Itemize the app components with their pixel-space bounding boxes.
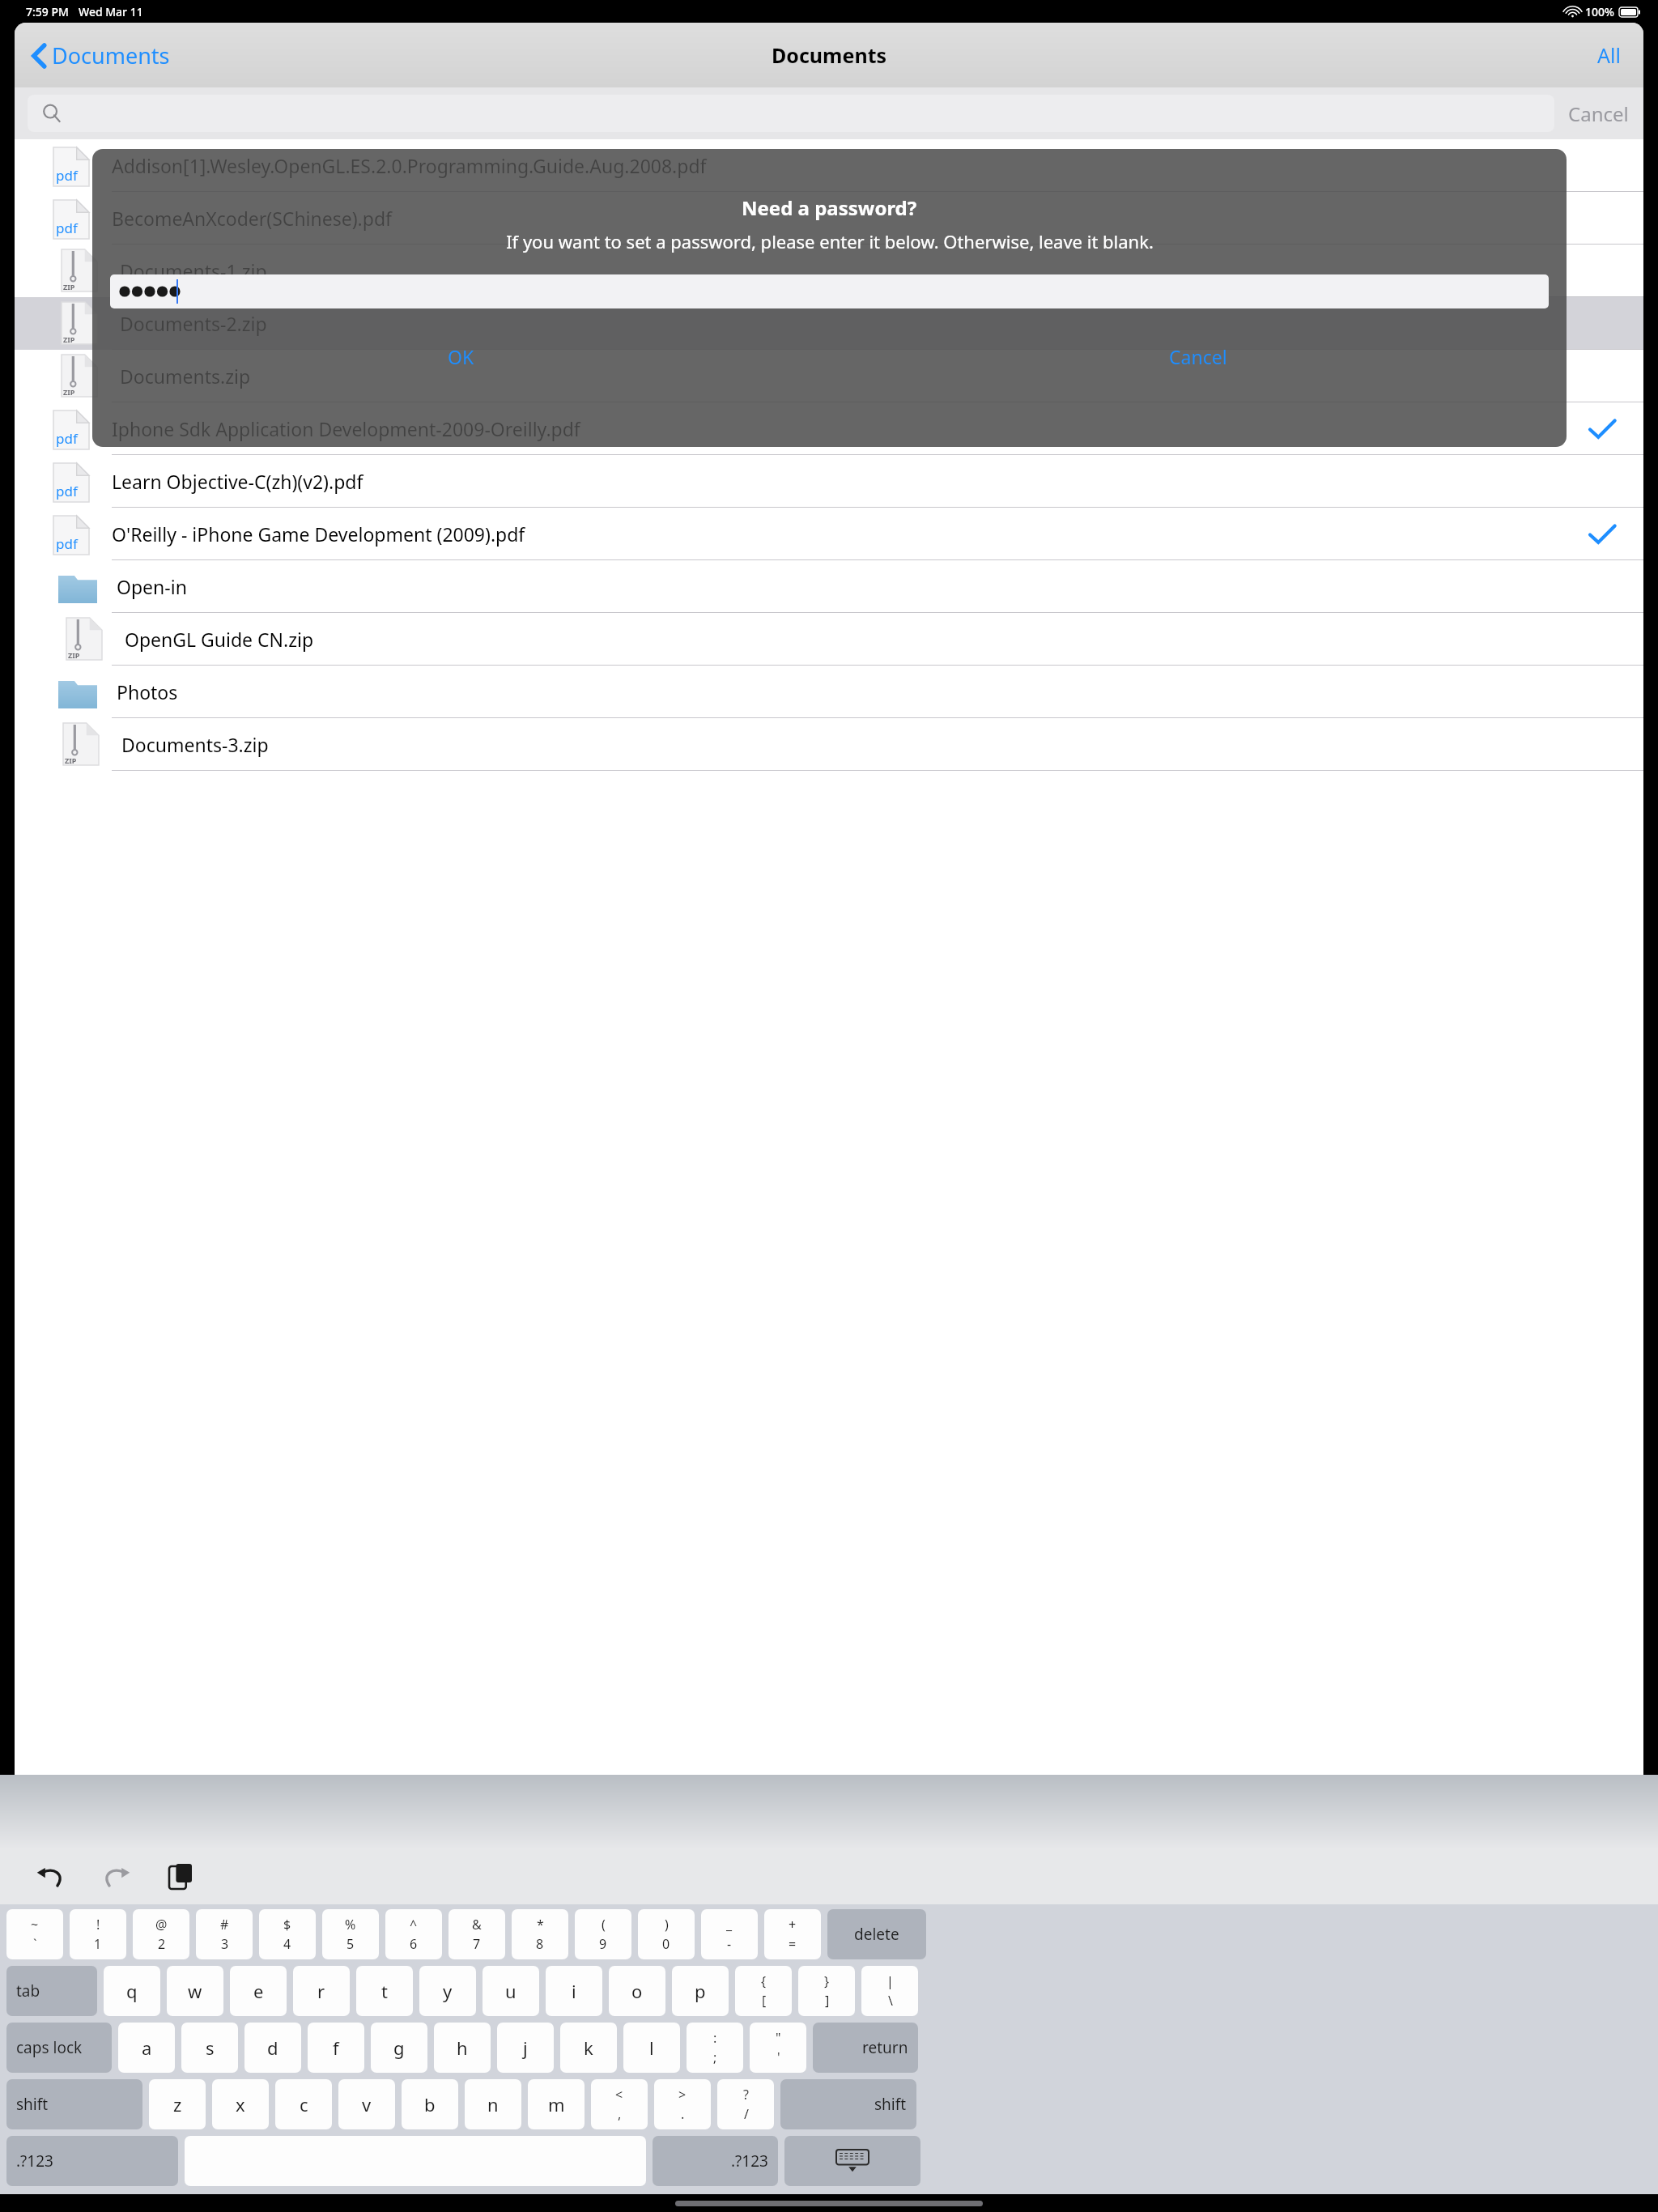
button[interactable]: y (419, 1966, 476, 2016)
button[interactable]: b (402, 2079, 458, 2129)
button[interactable]: ZIP (15, 613, 1643, 666)
button[interactable]: Cancel (1568, 100, 1629, 127)
staticText: pdf (56, 482, 78, 500)
button[interactable]: pdf (15, 402, 1643, 455)
staticText: + (789, 1916, 797, 1933)
button[interactable]: j (497, 2023, 554, 2073)
button[interactable]: > (654, 2079, 711, 2129)
button[interactable]: } (798, 1966, 855, 2016)
button[interactable]: { (735, 1966, 792, 2016)
button[interactable]: % (322, 1909, 379, 1959)
button[interactable] (110, 274, 1549, 308)
button[interactable]: ~ (6, 1909, 63, 1959)
button[interactable]: Cancel (829, 336, 1567, 376)
button[interactable]: _ (701, 1909, 758, 1959)
button[interactable]: i (546, 1966, 602, 2016)
button[interactable]: All (1597, 41, 1621, 69)
staticText: } (824, 1972, 830, 1990)
button[interactable]: l (623, 2023, 680, 2073)
staticText: a (142, 2035, 152, 2060)
button[interactable]: .?123 (6, 2136, 178, 2186)
button[interactable]: Documents (32, 40, 170, 70)
button[interactable]: r (293, 1966, 350, 2016)
button[interactable]: e (230, 1966, 287, 2016)
button[interactable]: : (687, 2023, 743, 2073)
button[interactable]: Paste (162, 1858, 199, 1895)
staticText: _ (726, 1916, 733, 1933)
button[interactable]: & (449, 1909, 505, 1959)
button[interactable]: Undo (32, 1858, 70, 1895)
button[interactable]: $ (259, 1909, 316, 1959)
button[interactable]: n (465, 2079, 521, 2129)
button[interactable]: < (591, 2079, 648, 2129)
button[interactable]: @ (133, 1909, 189, 1959)
button[interactable]: Hide keyboard (784, 2136, 920, 2186)
button[interactable]: a (118, 2023, 175, 2073)
staticText: 6 (410, 1935, 418, 1953)
button[interactable]: + (764, 1909, 821, 1959)
button[interactable]: x (212, 2079, 269, 2129)
button[interactable]: m (528, 2079, 585, 2129)
button[interactable]: h (434, 2023, 491, 2073)
button[interactable]: pdf (15, 508, 1643, 560)
button[interactable]: w (167, 1966, 223, 2016)
button[interactable]: s (181, 2023, 238, 2073)
button[interactable]: " (750, 2023, 806, 2073)
button[interactable]: .?123 (653, 2136, 778, 2186)
button[interactable]: caps lock (6, 2023, 112, 2073)
button[interactable]: delete (827, 1909, 926, 1959)
button[interactable]: ZIP (15, 297, 1643, 350)
button[interactable]: d (244, 2023, 301, 2073)
button[interactable]: OK (92, 336, 829, 376)
button[interactable]: ( (575, 1909, 631, 1959)
button[interactable]: | (861, 1966, 918, 2016)
staticText: $ (283, 1916, 291, 1933)
button[interactable]: tab (6, 1966, 97, 2016)
staticText: s (206, 2035, 215, 2060)
button[interactable] (28, 95, 1554, 132)
button[interactable]: Photos (15, 666, 1643, 718)
button[interactable]: ? (717, 2079, 774, 2129)
button[interactable]: g (371, 2023, 427, 2073)
staticText: , (618, 2105, 622, 2123)
button[interactable]: ZIP (15, 350, 1643, 402)
button[interactable]: ZIP (15, 718, 1643, 771)
button[interactable]: ZIP (15, 245, 1643, 297)
button[interactable]: c (275, 2079, 332, 2129)
button[interactable]: # (196, 1909, 253, 1959)
button[interactable]: q (104, 1966, 160, 2016)
button[interactable]: ! (70, 1909, 126, 1959)
button[interactable]: f (308, 2023, 364, 2073)
button[interactable]: v (338, 2079, 395, 2129)
staticText: @ (155, 1916, 168, 1933)
button[interactable]: pdf (15, 192, 1643, 245)
button[interactable]: p (672, 1966, 729, 2016)
staticText: .?123 (731, 2150, 768, 2172)
staticText: delete (854, 1924, 899, 1945)
staticText: \ (888, 1992, 893, 2010)
staticText: Documents (772, 41, 887, 69)
staticText: 7:59 PM (26, 4, 69, 19)
button[interactable]: Redo (97, 1858, 134, 1895)
staticText: Documents.zip (120, 364, 251, 389)
button[interactable]: ) (638, 1909, 695, 1959)
button[interactable]: * (512, 1909, 568, 1959)
staticText: < (615, 2086, 623, 2104)
button[interactable]: return (813, 2023, 918, 2073)
button[interactable]: shift (780, 2079, 916, 2129)
button[interactable]: pdf (15, 139, 1643, 192)
button[interactable]: z (149, 2079, 206, 2129)
button[interactable]: pdf (15, 455, 1643, 508)
staticText: Cancel (1169, 344, 1227, 369)
button[interactable]: t (356, 1966, 413, 2016)
staticText: h (457, 2035, 468, 2060)
button[interactable]: shift (6, 2079, 142, 2129)
staticText: ) (665, 1916, 669, 1933)
button[interactable]: o (609, 1966, 665, 2016)
button[interactable]: ^ (385, 1909, 442, 1959)
button[interactable]: Open-in (15, 560, 1643, 613)
button[interactable]: k (560, 2023, 617, 2073)
button[interactable]: u (483, 1966, 539, 2016)
